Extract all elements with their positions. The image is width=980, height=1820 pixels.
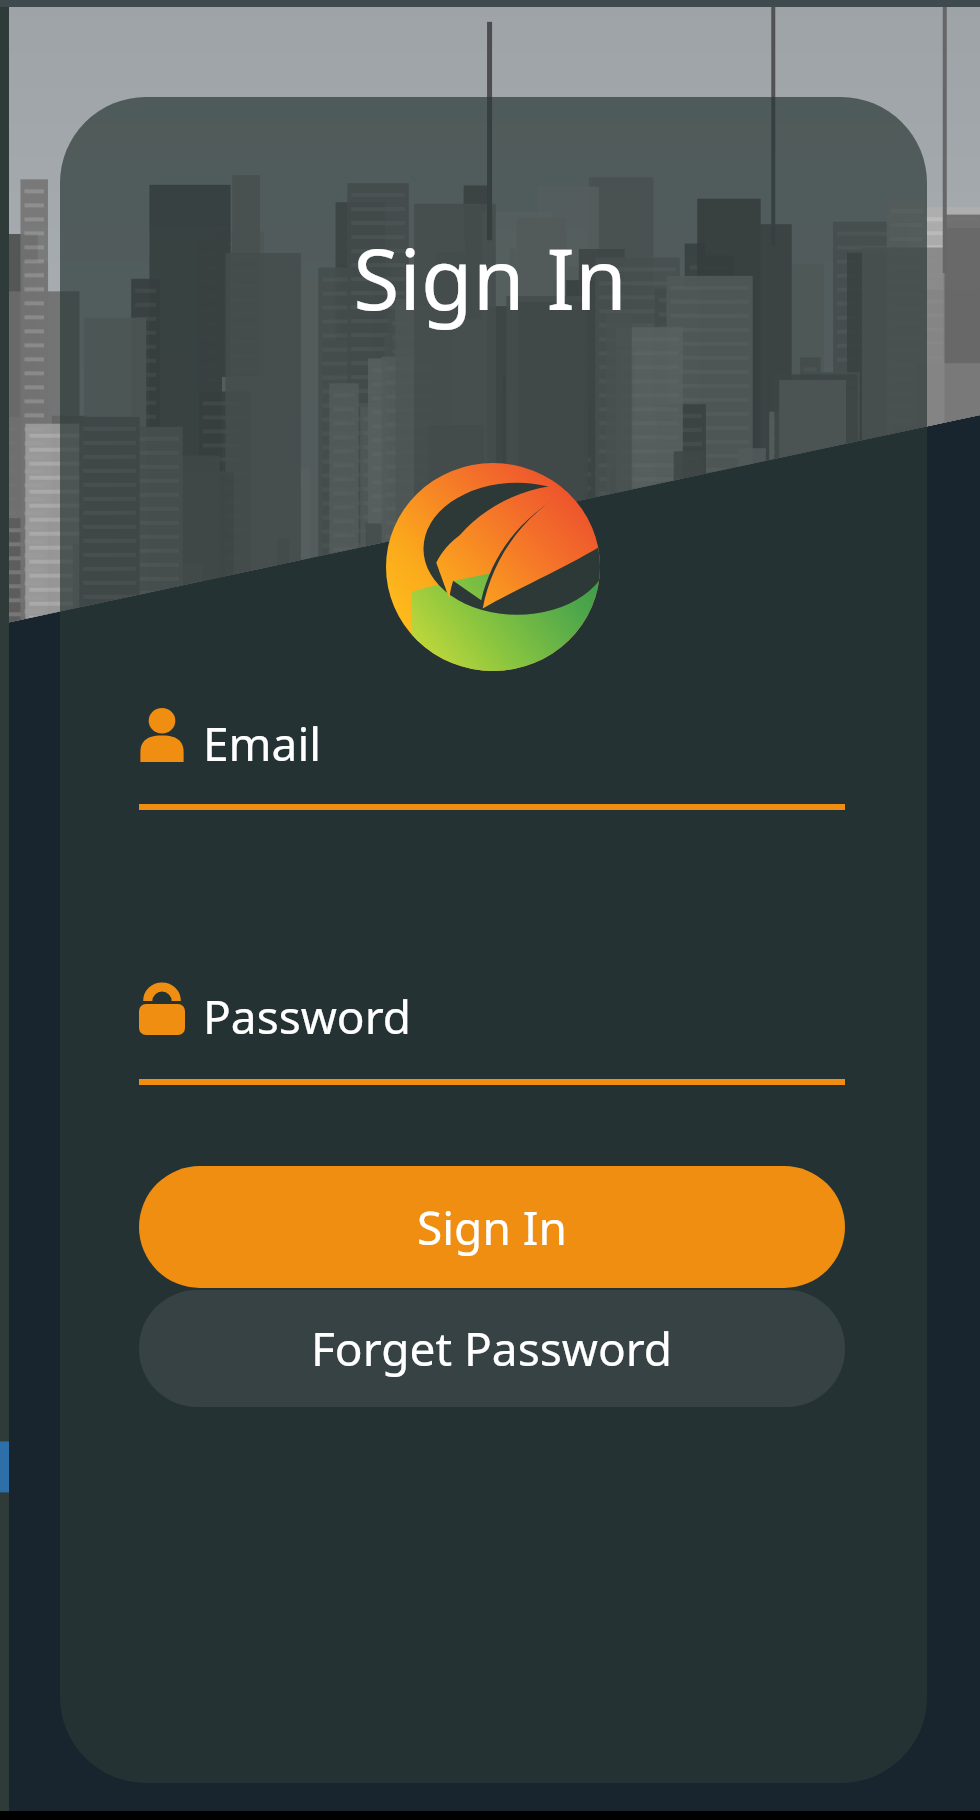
- staticText: Sign In: [417, 1196, 567, 1259]
- button[interactable]: Sign In: [139, 1166, 845, 1288]
- staticText: Sign In: [0, 220, 980, 334]
- button[interactable]: Forget Password: [139, 1290, 845, 1407]
- staticText: Forget Password: [311, 1317, 673, 1380]
- other: Lock: [139, 985, 185, 1035]
- staticText: Email: [203, 712, 322, 775]
- button[interactable]: User: [139, 700, 845, 812]
- staticText: Password: [203, 985, 412, 1048]
- button[interactable]: Lock: [139, 975, 845, 1087]
- other: User: [139, 708, 185, 762]
